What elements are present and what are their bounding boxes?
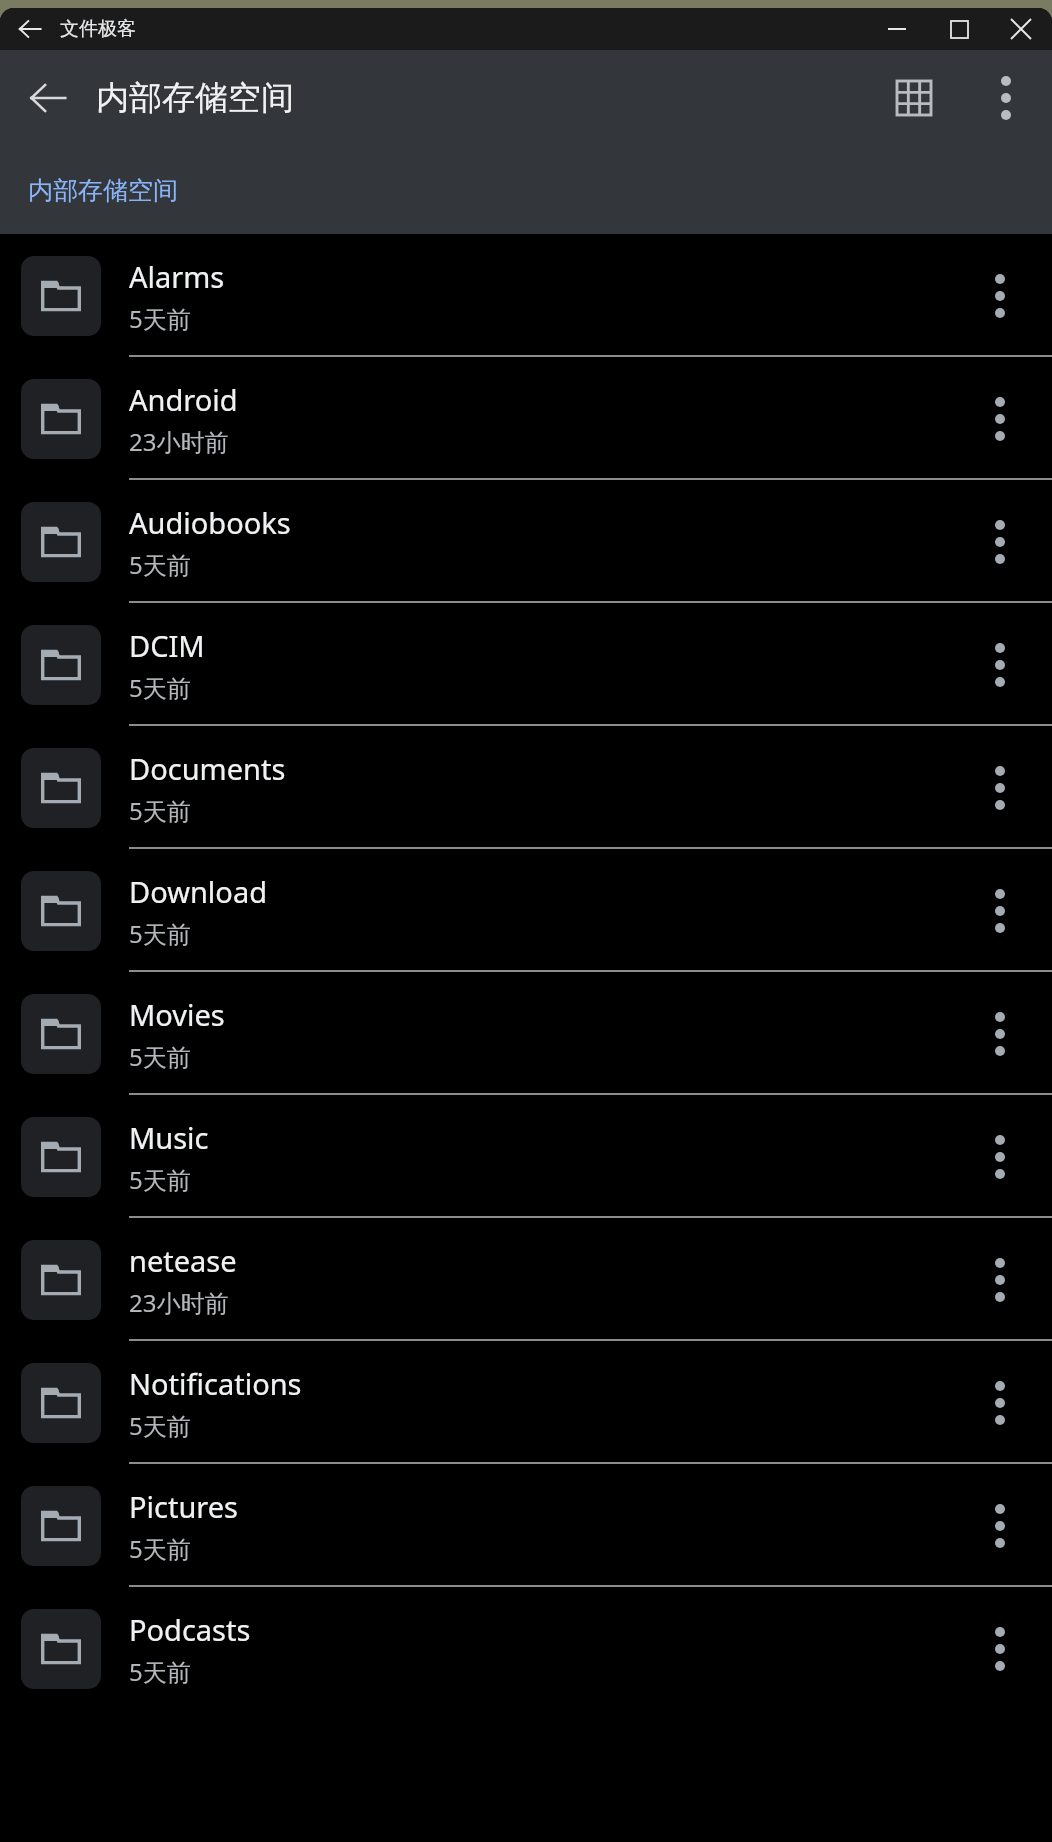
button[interactable]: More options for Music: [948, 1095, 1052, 1218]
staticText: DCIM: [129, 626, 205, 665]
staticText: 内部存储空间: [96, 77, 294, 119]
button[interactable]: 内部存储空间: [28, 167, 178, 214]
button[interactable]: Download: [0, 849, 1052, 972]
button[interactable]: Music: [0, 1095, 1052, 1218]
staticText: 5天前: [129, 794, 191, 827]
button[interactable]: More options for Podcasts: [948, 1587, 1052, 1710]
button[interactable]: Back: [0, 8, 60, 50]
button[interactable]: More options for netease: [948, 1218, 1052, 1341]
button[interactable]: Notifications: [0, 1341, 1052, 1464]
staticText: 5天前: [129, 302, 191, 335]
button[interactable]: Close: [990, 8, 1052, 50]
staticText: Alarms: [129, 257, 225, 296]
staticText: Android: [129, 380, 238, 419]
button[interactable]: Grid view: [868, 52, 960, 144]
staticText: Audiobooks: [129, 503, 291, 542]
staticText: Movies: [129, 995, 225, 1034]
staticText: netease: [129, 1241, 237, 1280]
button[interactable]: Movies: [0, 972, 1052, 1095]
button[interactable]: DCIM: [0, 603, 1052, 726]
staticText: 5天前: [129, 1163, 191, 1196]
staticText: 5天前: [129, 1040, 191, 1073]
button[interactable]: More options for Notifications: [948, 1341, 1052, 1464]
button[interactable]: Audiobooks: [0, 480, 1052, 603]
button[interactable]: Alarms: [0, 234, 1052, 357]
staticText: 5天前: [129, 917, 191, 950]
staticText: Music: [129, 1118, 209, 1157]
button[interactable]: Documents: [0, 726, 1052, 849]
button[interactable]: netease: [0, 1218, 1052, 1341]
button[interactable]: More options for Movies: [948, 972, 1052, 1095]
button[interactable]: More options: [960, 52, 1052, 144]
staticText: 23小时前: [129, 425, 229, 458]
button[interactable]: Navigate up: [0, 50, 96, 146]
button[interactable]: More options for Audiobooks: [948, 480, 1052, 603]
staticText: 5天前: [129, 1655, 191, 1688]
staticText: 5天前: [129, 548, 191, 581]
button[interactable]: Maximize: [928, 8, 990, 50]
staticText: Podcasts: [129, 1610, 251, 1649]
staticText: 5天前: [129, 671, 191, 704]
staticText: Download: [129, 872, 267, 911]
button[interactable]: More options for Alarms: [948, 234, 1052, 357]
button[interactable]: Pictures: [0, 1464, 1052, 1587]
staticText: Documents: [129, 749, 286, 788]
button[interactable]: More options for Pictures: [948, 1464, 1052, 1587]
button[interactable]: Podcasts: [0, 1587, 1052, 1710]
staticText: 23小时前: [129, 1286, 229, 1319]
button[interactable]: More options for Android: [948, 357, 1052, 480]
button[interactable]: More options for Documents: [948, 726, 1052, 849]
button[interactable]: More options for Download: [948, 849, 1052, 972]
staticText: Pictures: [129, 1487, 238, 1526]
button[interactable]: Minimize: [866, 8, 928, 50]
button[interactable]: Android: [0, 357, 1052, 480]
staticText: 文件极客: [60, 17, 136, 41]
staticText: 5天前: [129, 1409, 191, 1442]
staticText: 5天前: [129, 1532, 191, 1565]
staticText: Notifications: [129, 1364, 302, 1403]
staticText: 内部存储空间: [28, 175, 178, 206]
button[interactable]: More options for DCIM: [948, 603, 1052, 726]
